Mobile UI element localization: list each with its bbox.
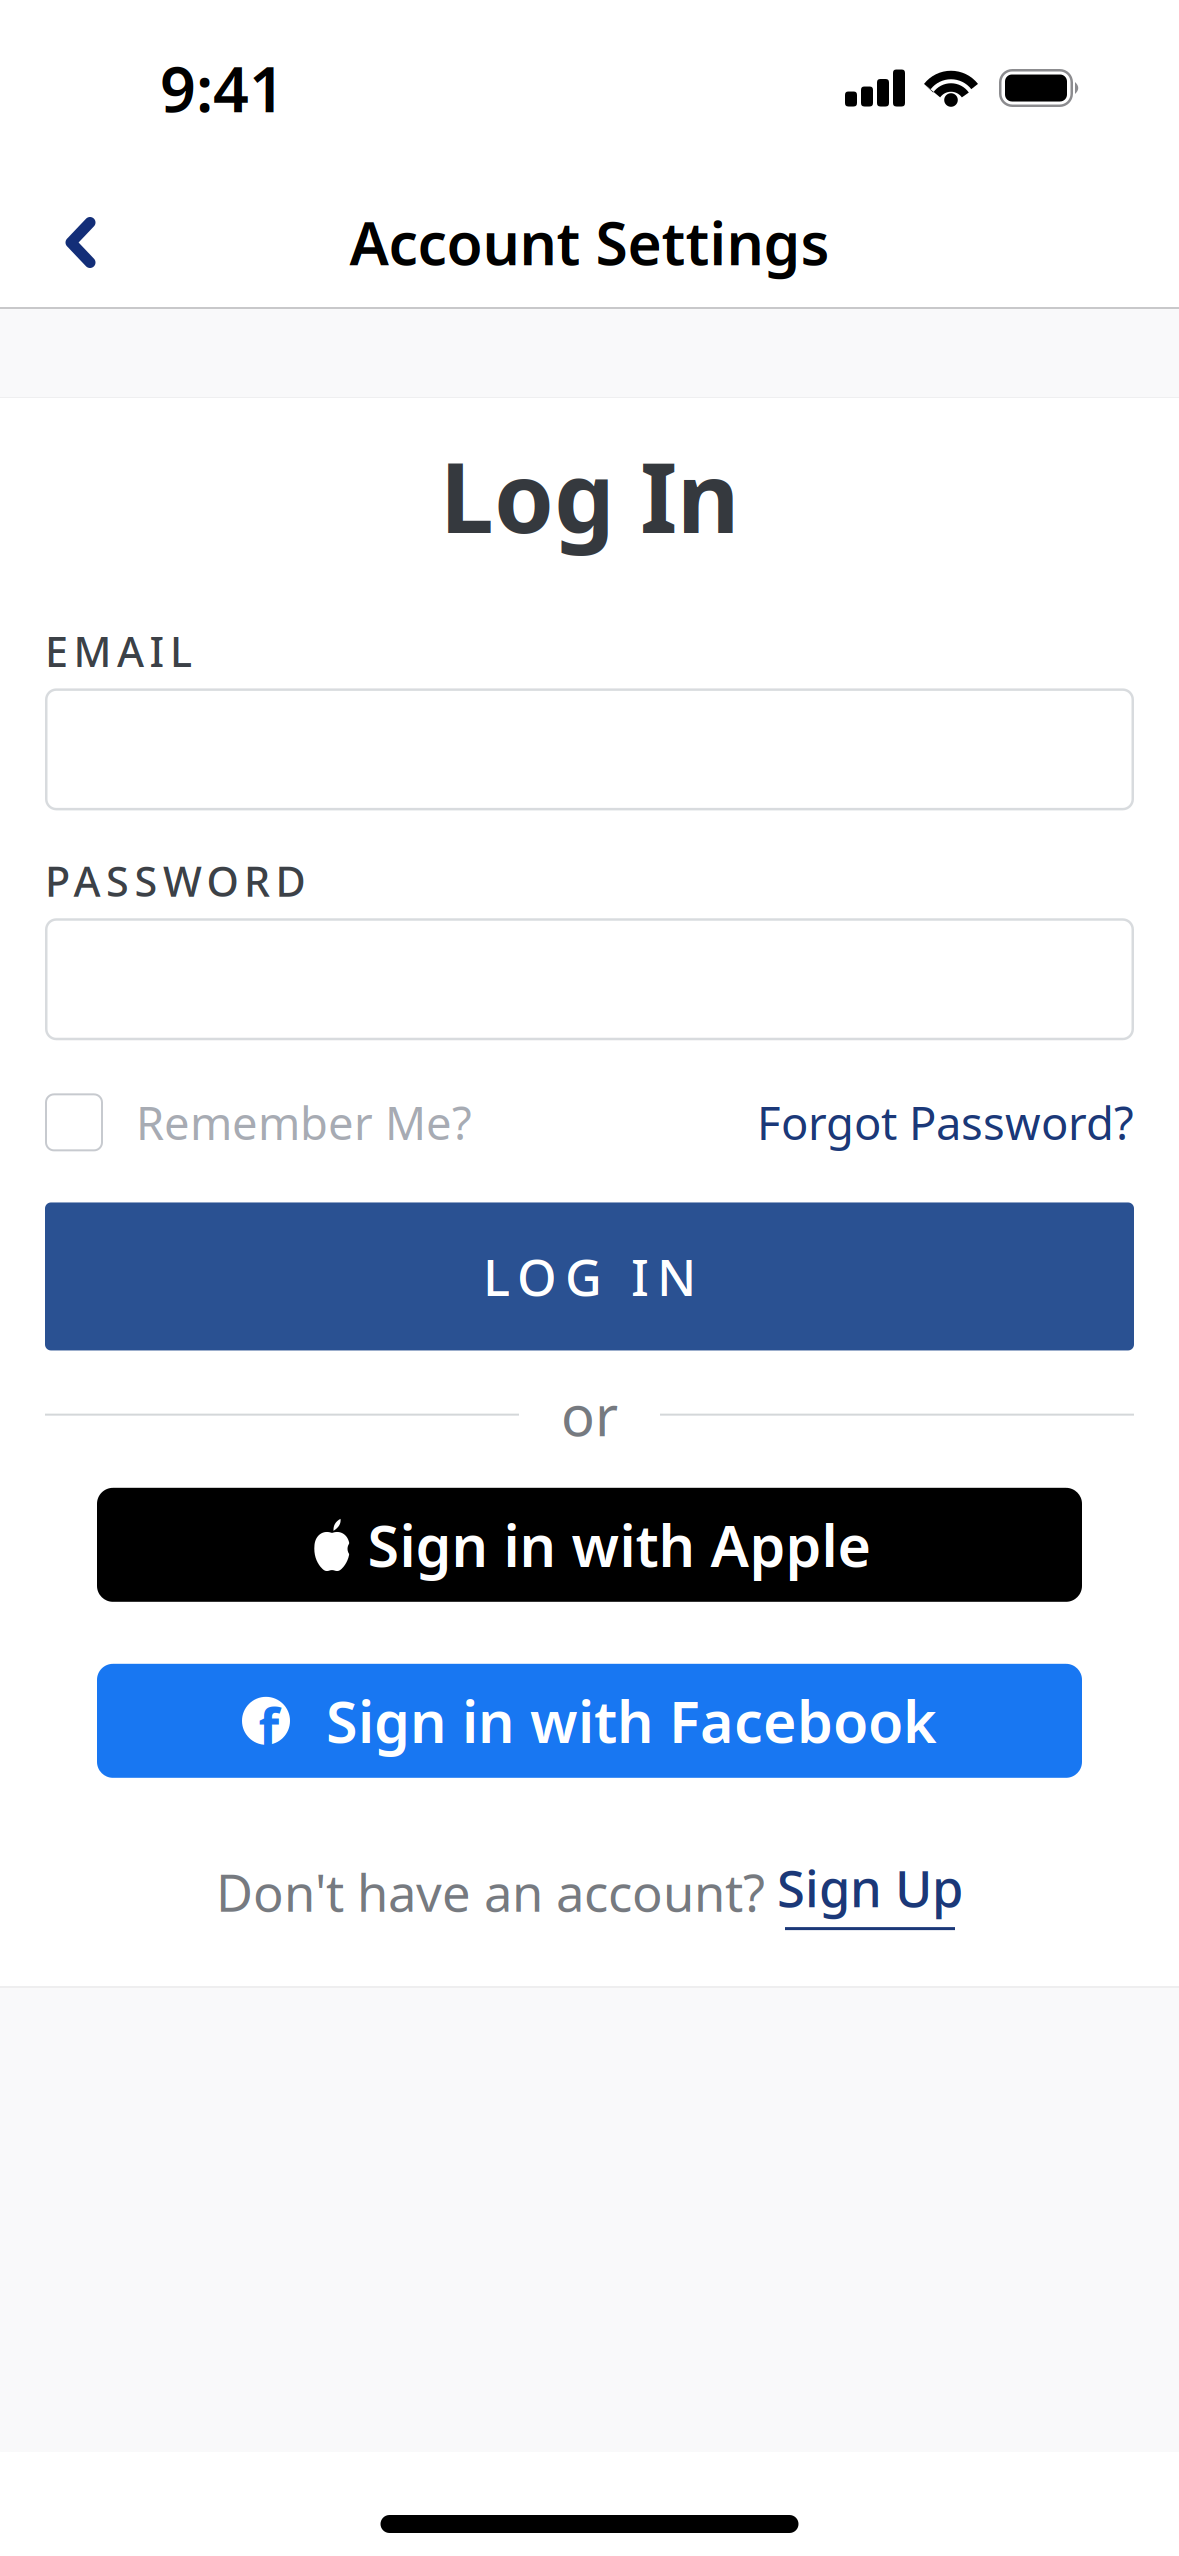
staticText: Sign in with Facebook (326, 1683, 937, 1759)
button[interactable]: Sign in with Apple (97, 1488, 1082, 1602)
staticText: LOG IN (483, 1243, 696, 1310)
staticText: Forgot Password? (757, 1092, 1134, 1152)
staticText: Sign Up (777, 1854, 963, 1921)
staticText: EMAIL (45, 623, 192, 678)
staticText: PASSWORD (45, 853, 305, 908)
button[interactable]: Password (45, 918, 1134, 1040)
staticText: f (258, 1691, 279, 1762)
button[interactable]: Back (0, 187, 96, 267)
staticText: or (561, 1377, 618, 1452)
button[interactable]: Email (45, 688, 1134, 810)
staticText: Don't have an account? (216, 1858, 765, 1926)
button[interactable]: Forgot Password? (757, 1092, 1134, 1152)
button[interactable]: LOG IN (45, 1202, 1134, 1350)
button[interactable]: Remember Me? (45, 1092, 472, 1152)
staticText: Account Settings (349, 203, 829, 281)
button[interactable]: f (97, 1664, 1082, 1778)
staticText: 9:41 (160, 46, 285, 130)
staticText: Sign in with Apple (367, 1507, 871, 1583)
staticText: Log In (440, 432, 739, 559)
staticText: Remember Me? (136, 1092, 472, 1152)
button[interactable]: Don't have an account? (216, 1854, 963, 1930)
